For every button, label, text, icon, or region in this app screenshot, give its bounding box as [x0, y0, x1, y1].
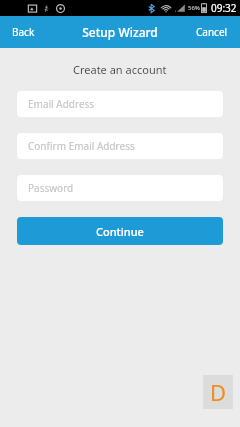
button[interactable]: Back [0, 19, 47, 45]
staticText: D [210, 377, 227, 407]
staticText: Setup Wizard [82, 24, 158, 40]
button[interactable]: Email Address [17, 91, 223, 117]
button[interactable]: Confirm Email Address [17, 133, 223, 159]
staticText: Continue [96, 224, 144, 239]
button[interactable]: Password [17, 175, 223, 201]
staticText: 09:32 [211, 1, 237, 15]
button[interactable]: Cancel [184, 19, 240, 45]
staticText: 56% [188, 4, 200, 12]
staticText: Back [12, 25, 35, 39]
button[interactable]: Continue [17, 217, 223, 245]
staticText: Create an account [73, 62, 167, 77]
staticText: Password [28, 181, 74, 195]
staticText: Email Address [28, 97, 95, 111]
staticText: Confirm Email Address [28, 139, 135, 153]
staticText: Cancel [196, 25, 228, 39]
